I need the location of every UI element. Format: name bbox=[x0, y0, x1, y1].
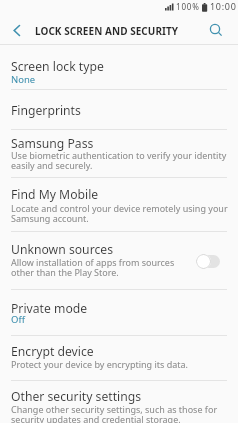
staticText: Other security settings bbox=[11, 388, 142, 405]
staticText: Unknown sources bbox=[11, 241, 113, 258]
staticText: security updates and credential storage. bbox=[11, 413, 181, 423]
staticText: Samsung Pass bbox=[11, 135, 94, 152]
staticText: Screen lock type bbox=[11, 58, 104, 75]
button[interactable] bbox=[13, 25, 21, 36]
staticText: Private mode bbox=[11, 300, 88, 317]
staticText: 10:00 bbox=[210, 0, 237, 12]
staticText: Off bbox=[11, 313, 25, 326]
staticText: other than the Play Store. bbox=[11, 266, 119, 278]
button[interactable] bbox=[0, 232, 238, 289]
staticText: 100% bbox=[176, 1, 200, 12]
button[interactable] bbox=[0, 178, 238, 231]
staticText: Protect your device by encrypting its da… bbox=[11, 358, 188, 370]
button[interactable] bbox=[0, 130, 238, 177]
staticText: Use biometric authentication to verify y… bbox=[11, 149, 227, 161]
staticText: Change other security settings, such as … bbox=[11, 403, 218, 415]
button[interactable] bbox=[198, 255, 220, 268]
staticText: LOCK SCREEN AND SECURITY bbox=[35, 24, 179, 38]
staticText: Fingerprints bbox=[11, 102, 81, 119]
staticText: Encrypt device bbox=[11, 343, 94, 360]
button[interactable] bbox=[0, 290, 238, 335]
button[interactable] bbox=[209, 23, 223, 37]
button[interactable] bbox=[0, 90, 238, 129]
staticText: Locate and control your device remotely … bbox=[11, 202, 228, 214]
staticText: Allow installation of apps from sources bbox=[11, 256, 175, 268]
staticText: easily and securely. bbox=[11, 159, 93, 171]
staticText: None bbox=[11, 73, 36, 86]
button[interactable] bbox=[0, 381, 238, 423]
button[interactable] bbox=[0, 45, 238, 89]
staticText: Find My Mobile bbox=[11, 186, 99, 203]
button[interactable] bbox=[0, 336, 238, 380]
staticText: Samsung account. bbox=[11, 212, 89, 224]
